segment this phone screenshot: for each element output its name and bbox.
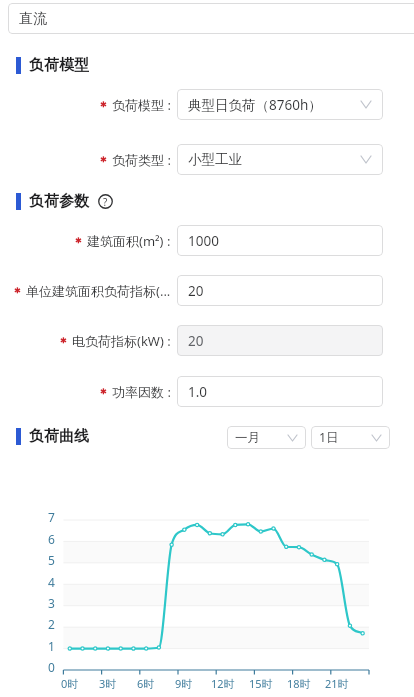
staticText: 负荷模型 :: [112, 96, 171, 114]
staticText: 单位建筑面积负荷指标(...: [26, 282, 171, 300]
button[interactable]: 直流: [8, 3, 414, 34]
button[interactable]: 帮助: [98, 194, 113, 209]
button[interactable]: 典型日负荷（8760h）: [177, 89, 383, 120]
staticText: 18时: [287, 676, 311, 691]
staticText: 1000: [188, 232, 219, 250]
staticText: 0时: [61, 676, 79, 691]
staticText: 负荷参数: [29, 192, 89, 211]
staticText: 负荷类型 :: [112, 151, 171, 169]
staticText: 负荷模型: [29, 56, 89, 75]
staticText: 20: [188, 332, 204, 350]
button[interactable]: 一月: [227, 426, 306, 449]
staticText: 9时: [175, 676, 193, 691]
staticText: 负荷曲线: [29, 427, 89, 446]
staticText: 1.0: [188, 383, 208, 401]
staticText: 功率因数 :: [112, 383, 171, 401]
staticText: 1日: [319, 429, 339, 446]
button[interactable]: 1日: [311, 426, 390, 449]
staticText: 一月: [235, 430, 260, 446]
staticText: 5: [48, 552, 55, 566]
staticText: 7: [48, 509, 55, 523]
staticText: 20: [188, 282, 204, 300]
staticText: 15时: [249, 676, 273, 691]
staticText: 典型日负荷（8760h）: [188, 96, 322, 114]
staticText: 4: [48, 574, 55, 588]
staticText: 2: [48, 616, 55, 630]
button[interactable]: 1.0: [177, 376, 383, 407]
staticText: 6时: [137, 676, 155, 691]
staticText: 0: [48, 659, 55, 673]
staticText: 1: [48, 638, 55, 652]
button[interactable]: 小型工业: [177, 144, 383, 175]
staticText: 小型工业: [188, 151, 242, 168]
button[interactable]: 1000: [177, 225, 383, 256]
staticText: 建筑面积(m²) :: [87, 232, 171, 250]
button[interactable]: 20: [177, 325, 383, 356]
staticText: 3时: [99, 676, 117, 691]
staticText: 3: [48, 595, 55, 609]
staticText: 直流: [19, 10, 47, 28]
button[interactable]: 20: [177, 275, 383, 306]
staticText: 21时: [325, 676, 349, 691]
staticText: ?: [103, 195, 108, 209]
staticText: 6: [48, 531, 55, 545]
staticText: 12时: [211, 676, 235, 691]
staticText: 电负荷指标(kW) :: [72, 332, 171, 350]
